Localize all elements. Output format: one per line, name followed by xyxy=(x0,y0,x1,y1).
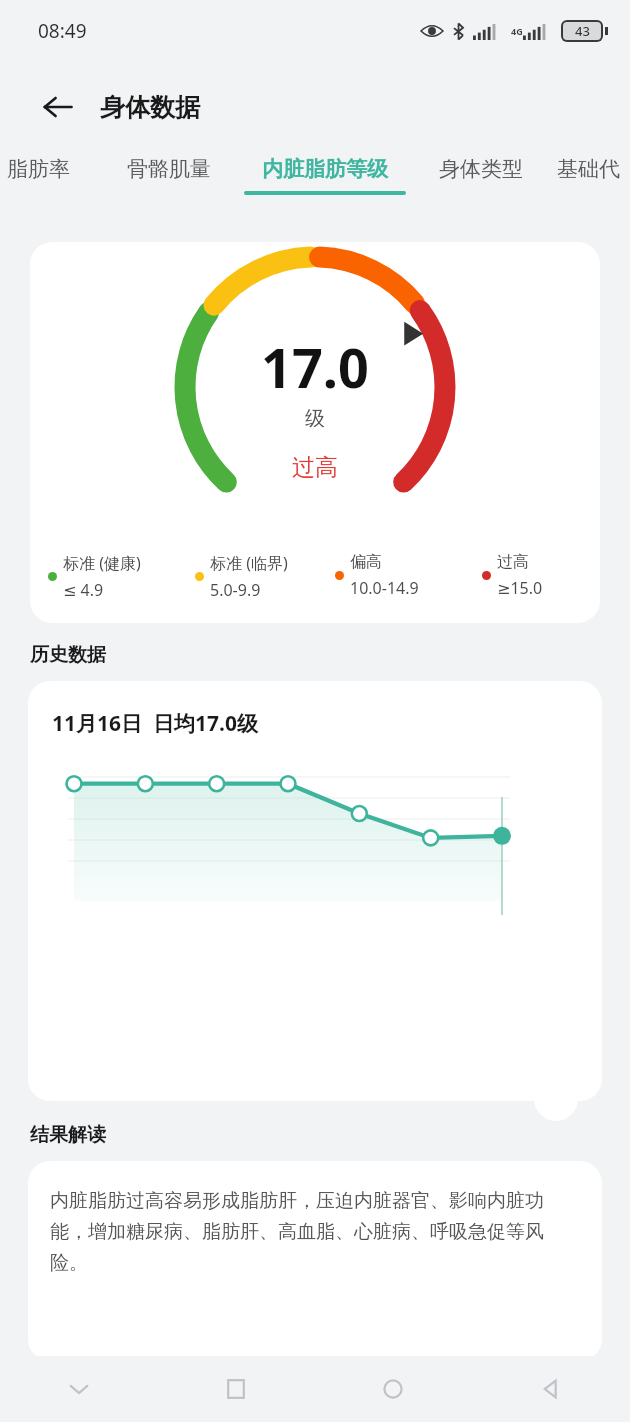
staticText: 基础代 xyxy=(557,156,620,182)
button[interactable]: 脂肪率 xyxy=(0,152,90,224)
button[interactable]: More xyxy=(534,1077,578,1121)
staticText: ≤ 4.9 xyxy=(63,579,104,601)
staticText: 身体类型 xyxy=(439,156,523,182)
staticText: 10.0-14.9 xyxy=(350,577,419,599)
staticText: 过高 xyxy=(497,552,529,572)
staticText: 4G xyxy=(511,25,523,37)
staticText: 43 xyxy=(575,22,590,40)
staticText: 身体数据 xyxy=(100,92,200,123)
staticText: 内脏脂肪等级 xyxy=(262,156,388,182)
button[interactable]: Hide keyboard xyxy=(0,1356,157,1422)
staticText: 脂肪率 xyxy=(7,156,70,182)
staticText: 级 xyxy=(305,406,325,431)
button[interactable]: 内脏脂肪过高容易形成脂肪肝，压迫内脏器官、影响内脏功能，增加糖尿病、脂肪肝、高血… xyxy=(28,1161,602,1361)
button[interactable]: 身体类型 xyxy=(416,152,546,224)
staticText: 偏高 xyxy=(350,552,382,572)
button[interactable]: Back xyxy=(34,83,82,131)
button[interactable]: 骨骼肌量 xyxy=(104,152,234,224)
staticText: 08:49 xyxy=(38,18,87,44)
staticText: 骨骼肌量 xyxy=(127,156,211,182)
staticText: 内脏脂肪过高容易形成脂肪肝，压迫内脏器官、影响内脏功能，增加糖尿病、脂肪肝、高血… xyxy=(50,1189,580,1275)
staticText: 历史数据 xyxy=(30,643,106,667)
staticText: 11月16日 日均17.0级 xyxy=(52,709,258,738)
staticText: 结果解读 xyxy=(30,1123,106,1147)
staticText: 标准 (临界) xyxy=(210,552,288,574)
staticText: 5.0-9.9 xyxy=(210,579,261,601)
button[interactable]: 11月16日 日均17.0级 xyxy=(28,681,602,1101)
staticText: 标准 (健康) xyxy=(63,552,141,574)
button[interactable]: Back xyxy=(472,1356,630,1422)
staticText: ≥15.0 xyxy=(497,577,543,599)
button[interactable]: 内脏脂肪等级 xyxy=(234,152,416,224)
button[interactable]: 基础代 xyxy=(546,152,630,224)
staticText: 过高 xyxy=(292,453,338,482)
button[interactable]: Recents xyxy=(157,1356,314,1422)
button[interactable]: 17.0 xyxy=(30,242,600,623)
staticText: 17.0 xyxy=(261,330,369,404)
button[interactable]: Home xyxy=(314,1356,472,1422)
